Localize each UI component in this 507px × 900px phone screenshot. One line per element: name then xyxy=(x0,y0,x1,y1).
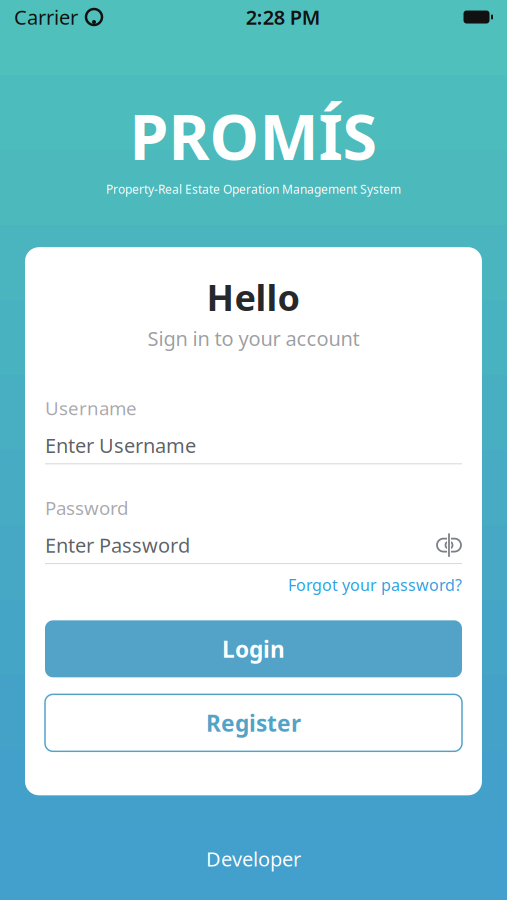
staticText: Register xyxy=(206,708,301,738)
staticText: PROMÍS xyxy=(129,94,377,177)
button[interactable]: Show password xyxy=(436,534,462,556)
button[interactable]: Developer xyxy=(206,845,301,872)
staticText: Carrier xyxy=(14,4,78,30)
button[interactable]: Login xyxy=(45,620,462,677)
staticText: Username xyxy=(45,395,137,420)
staticText: 2:28 PM xyxy=(246,4,321,30)
staticText: Forgot your password? xyxy=(288,574,462,595)
staticText: Sign in to your account xyxy=(147,325,359,352)
staticText: Hello xyxy=(206,273,300,321)
staticText: Property-Real Estate Operation Managemen… xyxy=(106,181,401,197)
staticText: Developer xyxy=(206,845,301,872)
staticText: Password xyxy=(45,495,128,520)
staticText: Enter Username xyxy=(45,432,196,459)
staticText: Login xyxy=(222,634,285,664)
staticText: Enter Password xyxy=(45,532,190,558)
button[interactable]: Register xyxy=(45,694,462,751)
button[interactable]: Forgot your password? xyxy=(288,574,462,595)
